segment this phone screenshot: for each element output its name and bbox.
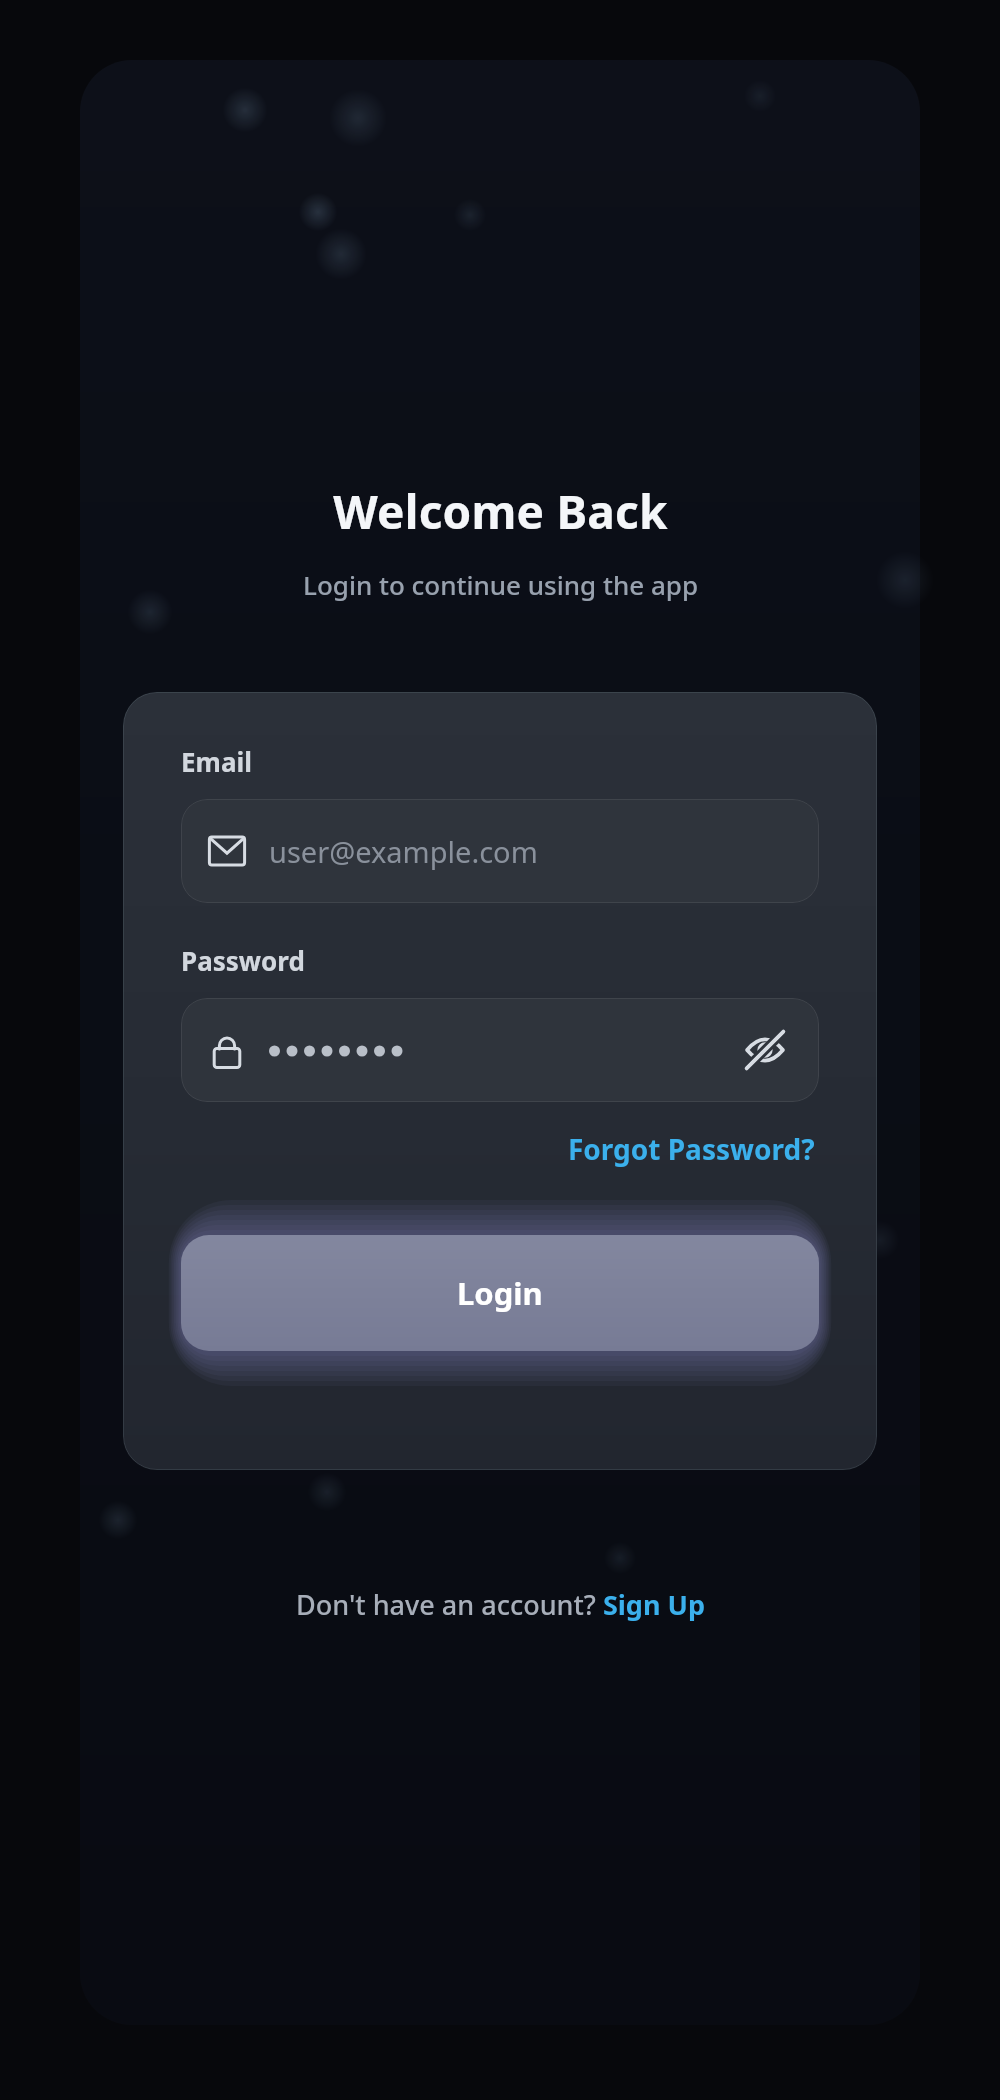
- staticText: Email: [181, 744, 253, 779]
- staticText: Login: [457, 1272, 543, 1314]
- staticText: Forgot Password?: [568, 1130, 815, 1168]
- staticText: Login to continue using the app: [303, 567, 698, 602]
- button[interactable]: Login: [181, 1235, 819, 1351]
- button[interactable]: Hide password: [737, 1022, 793, 1078]
- staticText: Welcome Back: [333, 480, 668, 543]
- staticText: Don't have an account? Sign Up: [296, 1586, 705, 1623]
- button[interactable]: user@example.com: [181, 799, 819, 903]
- staticText: user@example.com: [269, 832, 538, 871]
- button[interactable]: Don't have an account? Sign Up: [286, 1578, 715, 1631]
- button[interactable]: Hide password: [181, 998, 819, 1102]
- button[interactable]: Forgot Password?: [564, 1124, 819, 1174]
- staticText: Password: [181, 943, 305, 978]
